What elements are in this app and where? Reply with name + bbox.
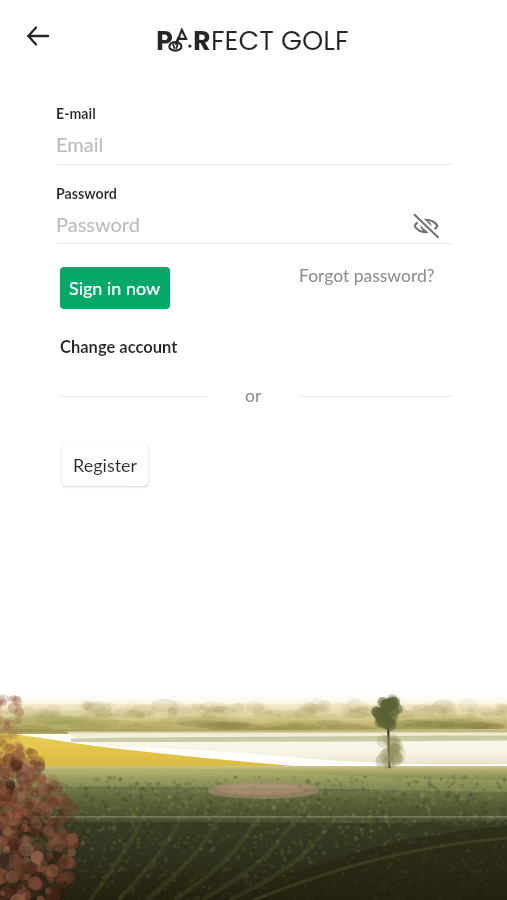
button[interactable]: Sign in now <box>60 267 170 309</box>
staticText: Password <box>56 185 117 202</box>
button[interactable]: Back <box>26 24 50 48</box>
button[interactable]: Show password <box>412 212 440 240</box>
staticText: FECT GOLF <box>211 22 349 60</box>
button[interactable]: Forgot password? <box>293 260 441 291</box>
staticText: Forgot password? <box>299 265 435 286</box>
staticText: Email <box>56 132 104 156</box>
button[interactable]: Change account <box>54 332 184 362</box>
button[interactable]: Register <box>62 444 148 486</box>
staticText: P <box>156 22 173 60</box>
staticText: E-mail <box>56 105 96 122</box>
staticText: Password <box>56 212 140 236</box>
staticText: R <box>193 22 211 60</box>
staticText: Register <box>73 454 138 476</box>
staticText: Change account <box>60 337 178 357</box>
staticText: Sign in now <box>69 277 161 299</box>
staticText: or <box>245 385 262 406</box>
